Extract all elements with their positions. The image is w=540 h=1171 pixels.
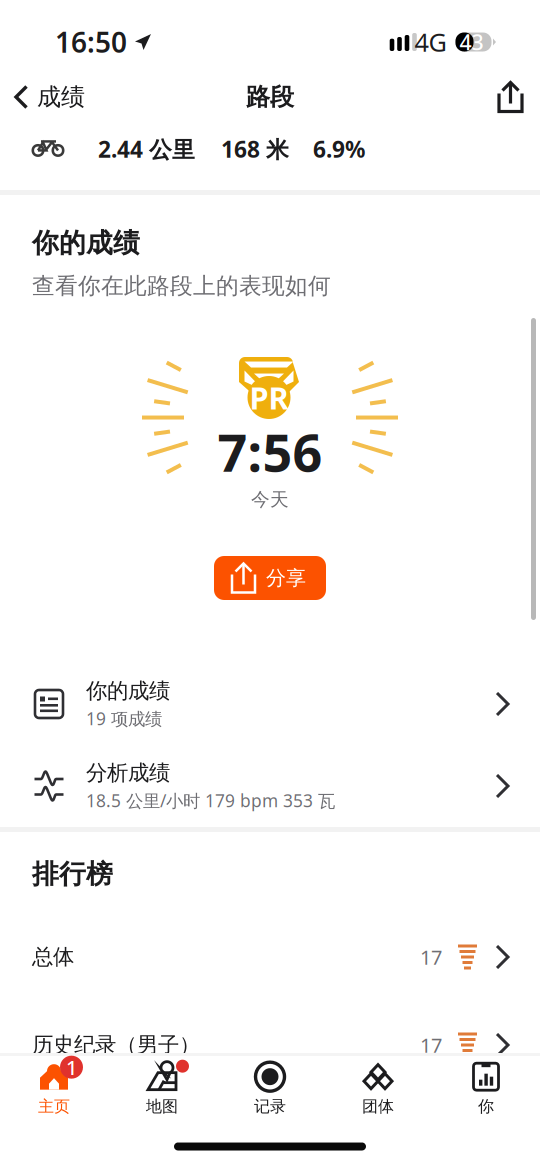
staticText: 168 米 [221, 134, 289, 164]
staticText: PR [249, 377, 288, 418]
staticText: 总体 [32, 944, 74, 970]
staticText: 分享 [266, 566, 306, 590]
staticText: 你的成绩 [86, 678, 170, 704]
button[interactable]: 成绩 [0, 68, 97, 126]
staticText: 记录 [254, 1097, 286, 1116]
button[interactable]: 团体 [324, 1056, 432, 1122]
staticText: 17 [420, 1032, 442, 1058]
staticText: 查看你在此路段上的表现如何 [32, 272, 331, 300]
button[interactable]: 地图 [108, 1056, 216, 1122]
staticText: 路段 [246, 82, 294, 112]
staticText: 43 [459, 28, 483, 56]
staticText: 4G [414, 25, 446, 59]
button[interactable]: 分享 [481, 68, 540, 126]
button[interactable]: 分析成绩 [0, 745, 540, 827]
staticText: 你 [478, 1097, 494, 1116]
staticText: 18.5 公里/小时 179 bpm 353 瓦 [86, 789, 335, 812]
staticText: 分析成绩 [86, 760, 170, 786]
staticText: 团体 [362, 1097, 394, 1116]
staticText: 7:56 [217, 417, 322, 486]
button[interactable]: 你 [432, 1056, 540, 1122]
staticText: 16:50 [55, 23, 127, 61]
button[interactable]: 分享 [214, 556, 326, 600]
staticText: 成绩 [37, 82, 85, 112]
staticText: 地图 [146, 1097, 178, 1116]
button[interactable]: 你的成绩 [0, 663, 540, 745]
button[interactable]: 历史纪录（男子） [0, 1001, 540, 1089]
staticText: 6.9% [313, 134, 365, 164]
staticText: 主页 [38, 1097, 70, 1116]
staticText: 你的成绩 [32, 227, 140, 259]
button[interactable]: 1 [0, 1056, 108, 1122]
staticText: 今天 [251, 488, 289, 511]
staticText: 1 [66, 1054, 77, 1080]
staticText: 2.44 公里 [98, 134, 195, 164]
staticText: 17 [420, 944, 442, 970]
staticText: 19 项成绩 [86, 707, 162, 730]
button[interactable]: 记录 [216, 1056, 324, 1122]
button[interactable]: 总体 [0, 913, 540, 1001]
staticText: 排行榜 [32, 858, 113, 890]
staticText: 历史纪录（男子） [32, 1032, 200, 1058]
